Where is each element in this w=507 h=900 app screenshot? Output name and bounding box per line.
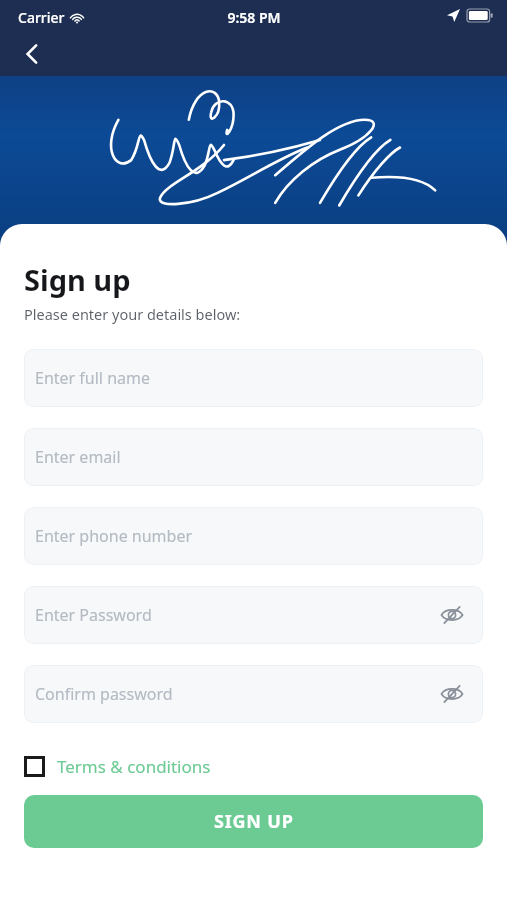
button[interactable]: SIGN UP (24, 795, 483, 848)
button[interactable]: Show password (435, 677, 469, 711)
button[interactable]: Enter Password (24, 586, 483, 644)
button[interactable]: Enter phone number (24, 507, 483, 565)
staticText: Enter Password (35, 604, 152, 626)
button[interactable]: Terms & conditions (24, 751, 211, 782)
staticText: SIGN UP (214, 809, 294, 834)
staticText: 9:58 PM (227, 8, 281, 27)
staticText: Enter phone number (35, 525, 193, 547)
button[interactable]: Back (8, 30, 56, 78)
staticText: Carrier (18, 8, 65, 27)
button[interactable]: Confirm password (24, 665, 483, 723)
staticText: Enter email (35, 446, 121, 468)
staticText: Confirm password (35, 683, 173, 705)
staticText: Terms & conditions (57, 755, 211, 778)
button[interactable]: Enter full name (24, 349, 483, 407)
other: Logo (96, 82, 416, 208)
button[interactable]: Enter email (24, 428, 483, 486)
staticText: Sign up (24, 260, 131, 299)
button[interactable]: Show password (435, 598, 469, 632)
staticText: Please enter your details below: (24, 304, 241, 324)
staticText: Enter full name (35, 367, 151, 389)
